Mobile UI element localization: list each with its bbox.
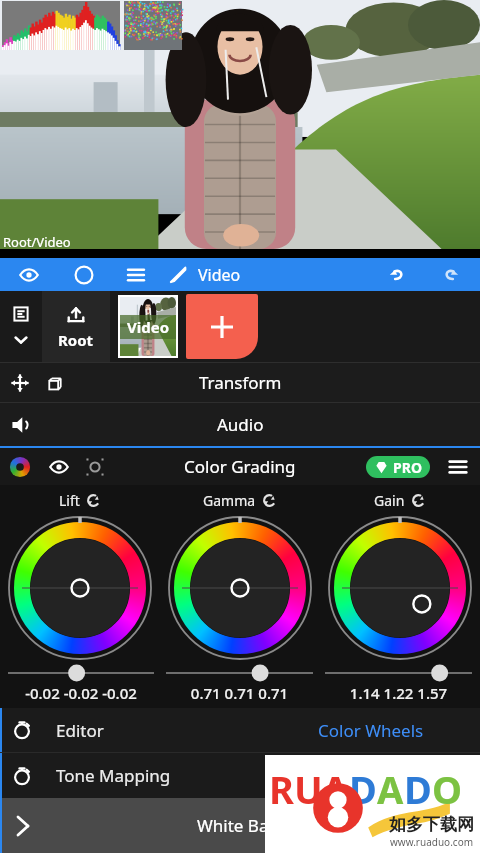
button[interactable]: Root	[42, 291, 110, 362]
staticText: Audio	[217, 413, 264, 436]
button[interactable]: Add layer	[186, 294, 258, 359]
button[interactable]: Adjust 1.14 1.22 1.57	[319, 663, 478, 683]
staticText: Video	[127, 317, 170, 337]
button[interactable]: Tone Mapping	[0, 753, 480, 798]
button[interactable]: Undo	[368, 258, 424, 291]
staticText: -0.02 -0.02 -0.02	[2, 683, 160, 703]
button[interactable]: PRO	[366, 456, 430, 478]
button[interactable]: Layers	[0, 291, 42, 362]
button[interactable]: Video	[162, 258, 247, 291]
staticText: Root/Video	[3, 233, 71, 251]
staticText: A	[377, 763, 404, 815]
staticText: 如多下载网	[389, 814, 474, 835]
button[interactable]: Gain	[368, 489, 432, 512]
staticText: 0.71 0.71 0.71	[160, 683, 319, 703]
button[interactable]: Preview visibility	[0, 258, 58, 291]
staticText: www.ruaduo.com	[390, 835, 474, 849]
staticText: RUA	[269, 763, 349, 815]
button[interactable]: White Bala	[0, 798, 480, 853]
button[interactable]: Toggle effect visibility	[46, 454, 72, 480]
button[interactable]: Mask region	[82, 454, 108, 480]
button[interactable]: Audio	[0, 403, 480, 446]
button[interactable]: Gain color wheel	[327, 515, 473, 661]
button[interactable]: Adjust 0.71 0.71 0.71	[160, 663, 319, 683]
button[interactable]: Adjust -0.02 -0.02 -0.02	[2, 663, 160, 683]
staticText: White Bala	[197, 814, 283, 837]
button[interactable]: Lift	[53, 489, 107, 512]
staticText: Tone Mapping	[56, 764, 171, 787]
staticText: Gamma	[203, 491, 256, 510]
staticText: Editor	[56, 719, 104, 742]
staticText: O	[432, 763, 463, 815]
staticText: D	[404, 763, 432, 815]
staticText: D	[349, 763, 377, 815]
button[interactable]: Redo	[424, 258, 480, 291]
button[interactable]: Mask	[58, 258, 110, 291]
staticText: Color Wheels	[318, 719, 424, 742]
button[interactable]: Effect menu	[444, 453, 472, 481]
staticText: Lift	[59, 491, 80, 510]
staticText: Transform	[199, 371, 282, 394]
button[interactable]: Gamma	[197, 489, 283, 512]
button[interactable]: Gamma color wheel	[167, 515, 313, 661]
button[interactable]: Lift color wheel	[7, 515, 153, 661]
button[interactable]: Transform	[0, 363, 480, 402]
staticText: PRO	[393, 458, 422, 477]
staticText: Gain	[374, 491, 405, 510]
button[interactable]: Video layer	[120, 297, 176, 356]
staticText: Color Grading	[184, 455, 296, 478]
staticText: Video	[198, 264, 241, 286]
button[interactable]: Editor	[0, 708, 480, 752]
staticText: 1.14 1.22 1.57	[319, 683, 478, 703]
button[interactable]: Color wheel mode	[8, 455, 32, 479]
button[interactable]: Color wheel mode	[0, 448, 480, 485]
button[interactable]: Menu	[110, 258, 162, 291]
staticText: Root	[58, 330, 94, 350]
